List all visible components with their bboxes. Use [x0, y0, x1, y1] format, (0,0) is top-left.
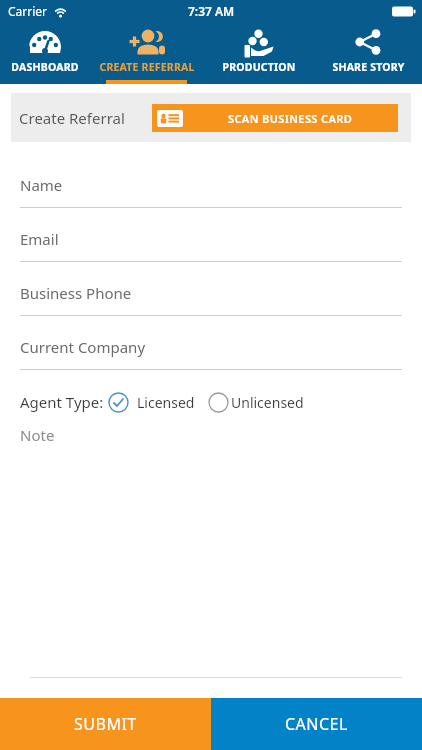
staticText: CANCEL — [285, 713, 348, 735]
button[interactable]: CREATE REFERRAL — [90, 22, 203, 80]
staticText: PRODUCTION — [222, 60, 296, 74]
staticText: DASHBOARD — [11, 60, 79, 74]
staticText: Name — [20, 175, 63, 195]
staticText: Carrier — [8, 3, 48, 19]
button[interactable]: DASHBOARD — [0, 22, 90, 80]
staticText: Licensed — [137, 393, 195, 412]
button[interactable]: Business Phone — [20, 283, 402, 337]
staticText: Note — [20, 425, 55, 445]
staticText: Business Phone — [20, 283, 132, 303]
button[interactable]: SCAN BUSINESS CARD — [152, 104, 398, 132]
button[interactable]: Name — [20, 175, 402, 229]
staticText: Unlicensed — [231, 393, 304, 412]
staticText: 7:37 AM — [188, 3, 235, 19]
staticText: SHARE STORY — [332, 60, 405, 74]
button[interactable]: Current Company — [20, 337, 402, 391]
button[interactable]: SHARE STORY — [314, 22, 422, 80]
staticText: SCAN BUSINESS CARD — [228, 111, 353, 126]
staticText: SUBMIT — [74, 713, 137, 735]
staticText: Current Company — [20, 337, 146, 357]
button[interactable]: Unlicensed — [208, 392, 304, 413]
button[interactable]: SUBMIT — [0, 698, 211, 750]
staticText: CREATE REFERRAL — [99, 60, 195, 74]
button[interactable]: CANCEL — [211, 698, 422, 750]
button[interactable]: PRODUCTION — [203, 22, 314, 80]
button[interactable]: Licensed — [108, 392, 195, 413]
button[interactable]: Email — [20, 229, 402, 283]
staticText: Email — [20, 229, 59, 249]
staticText: Create Referral — [19, 108, 125, 128]
staticText: Agent Type: — [20, 392, 104, 412]
